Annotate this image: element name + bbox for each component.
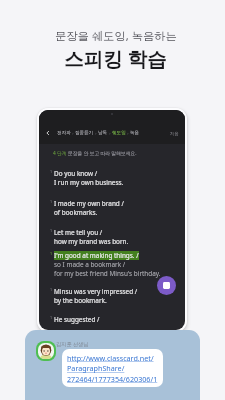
button[interactable]: 녹음 — [130, 130, 140, 136]
staticText: 1 — [50, 169, 54, 174]
staticText: 스피킹 학습 — [64, 45, 167, 72]
button[interactable]: 집중듣기 — [75, 130, 94, 136]
staticText: 4 단계 — [53, 150, 68, 157]
staticText: 1 — [50, 287, 54, 292]
staticText: > — [71, 131, 75, 135]
staticText: 1 — [50, 199, 54, 204]
staticText: He suggested / — [54, 315, 100, 324]
button[interactable]: 쉐도잉 — [112, 130, 126, 136]
button[interactable]: Open shared link — [62, 349, 163, 387]
staticText: Minsu was very impressed / by the bookma… — [54, 287, 138, 305]
button[interactable]: Stop recording — [157, 276, 176, 295]
staticText: I made my own brand / of bookmarks. — [54, 199, 124, 217]
button[interactable]: Back — [44, 129, 52, 137]
staticText: Do you know / I run my own business. — [54, 169, 124, 187]
staticText: so I made a bookmark / for my best frien… — [54, 260, 161, 278]
staticText: I'm good at making things. / — [54, 251, 139, 260]
staticText: > — [94, 131, 98, 135]
button[interactable]: 낭독 — [98, 130, 108, 136]
staticText: > — [108, 131, 112, 135]
staticText: 1 — [50, 251, 54, 256]
staticText: > — [126, 131, 130, 135]
staticText: 1 — [50, 228, 54, 233]
staticText: 문장을 쉐도잉, 녹음하는 — [55, 28, 177, 43]
staticText: 1 — [50, 315, 54, 320]
button[interactable]: 전자파 — [57, 130, 71, 136]
staticText: 처음 — [170, 131, 179, 136]
staticText: http://www.classcard.net/ ParagraphShare… — [67, 353, 158, 384]
staticText: 김지훈 선생님 — [56, 340, 89, 347]
staticText: Let me tell you / how my brand was born. — [54, 228, 129, 246]
staticText: 문장을 안 보고 따라 말해보세요. — [68, 150, 137, 157]
